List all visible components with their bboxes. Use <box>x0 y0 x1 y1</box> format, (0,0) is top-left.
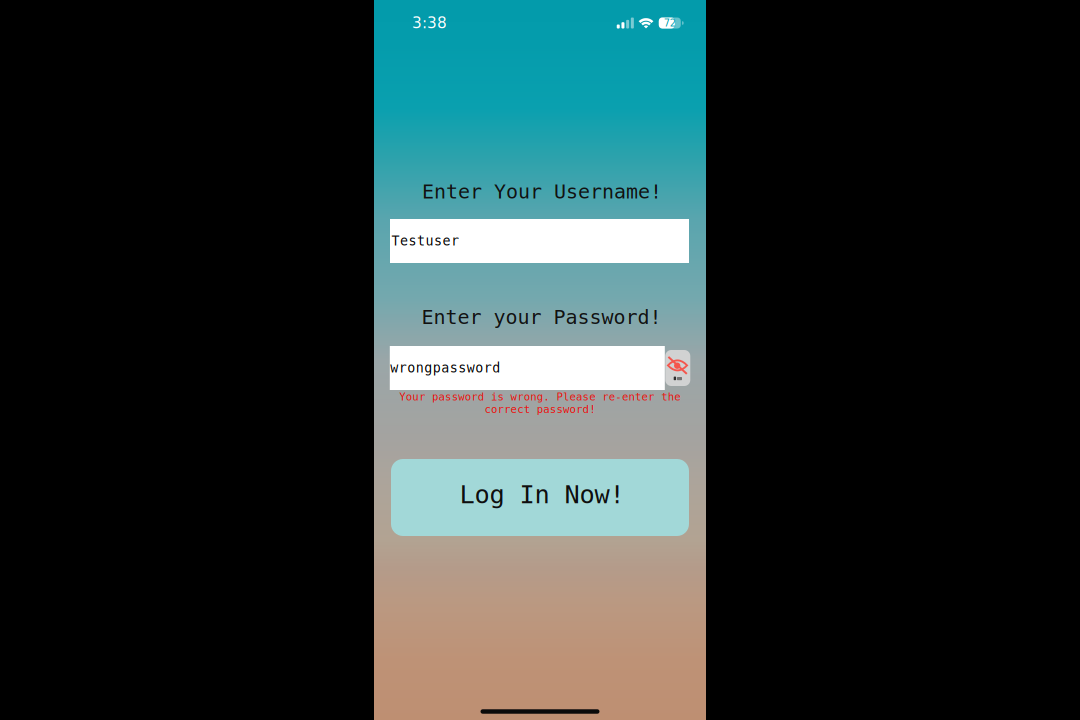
staticText: wrongpassword <box>390 360 500 376</box>
staticText: Log In Now! <box>459 480 624 509</box>
staticText: 3:38 <box>412 14 447 32</box>
staticText: 72 <box>664 17 676 29</box>
staticText: Enter your Password! <box>421 305 661 329</box>
button[interactable]: Hide password <box>665 350 690 386</box>
staticText: Testuser <box>391 233 459 249</box>
staticText: Enter Your Username! <box>422 180 662 203</box>
button[interactable]: Testuser <box>390 219 689 263</box>
button[interactable]: Log In Now! <box>391 459 689 536</box>
button[interactable]: wrongpassword <box>390 346 665 390</box>
staticText: Your password is wrong. Please re-enter … <box>399 391 680 415</box>
